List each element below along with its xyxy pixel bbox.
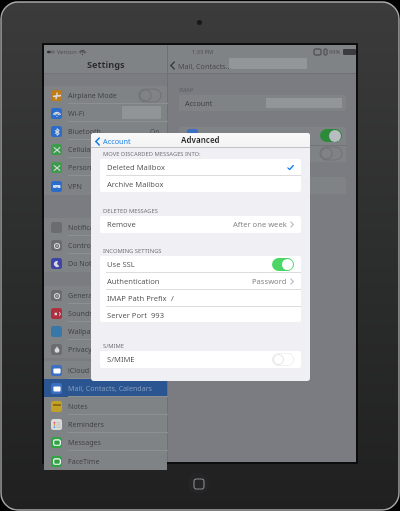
staticText: Wi-Fi [68, 108, 85, 118]
button[interactable]: Personal Hotspot [44, 158, 167, 176]
button[interactable]: Remove [100, 216, 301, 232]
staticText: Password [252, 276, 287, 286]
button[interactable]: Switch [320, 147, 342, 160]
staticText: Verizon [57, 48, 77, 56]
staticText: On [150, 127, 160, 136]
button[interactable]: Privacy [44, 340, 167, 358]
staticText: Archive Mailbox [107, 179, 164, 189]
staticText: Cellular [68, 144, 94, 154]
button[interactable]: Switch [139, 89, 161, 102]
button[interactable]: Authentication [100, 273, 301, 289]
staticText: Settings [87, 58, 125, 71]
staticText: 99% [329, 48, 341, 56]
staticText: After one week [233, 219, 287, 229]
staticText: Wallpaper [68, 326, 102, 336]
staticText: Account [185, 98, 213, 108]
staticText: Server Port [107, 310, 147, 320]
staticText: Use SSL [107, 259, 135, 269]
staticText: Control Center [68, 240, 117, 250]
staticText: Mail, Contacts, Calendars [68, 383, 152, 393]
staticText: / [171, 293, 174, 303]
staticText: VPN [53, 184, 61, 189]
staticText: Account [103, 136, 131, 146]
button[interactable]: Notifications [44, 218, 167, 236]
staticText: Reminders [68, 419, 104, 429]
button[interactable]: Deleted Mailbox [100, 159, 301, 175]
staticText: Notes [68, 401, 88, 411]
button[interactable]: FaceTime [44, 452, 167, 470]
staticText: INCOMING SETTINGS [103, 247, 162, 255]
staticText: Deleted Mailbox [107, 162, 165, 172]
button[interactable]: Switch on [272, 258, 294, 271]
button[interactable]: Back [170, 59, 400, 72]
button[interactable]: Server Port [100, 307, 301, 322]
staticText: iCloud [68, 365, 90, 375]
staticText: Messages [68, 437, 101, 447]
staticText: 1:33 PM [192, 48, 214, 56]
button[interactable]: Do Not Disturb [44, 254, 167, 272]
staticText: Personal Hotspot [68, 162, 126, 172]
staticText: Authentication [107, 276, 160, 286]
staticText: Do Not Disturb [68, 258, 119, 268]
button[interactable]: Switch on [320, 129, 342, 142]
button[interactable]: Cellular [44, 140, 167, 158]
button[interactable]: General [44, 286, 167, 304]
button[interactable]: Account [179, 95, 346, 111]
staticText: MOVE DISCARDED MESSAGES INTO: [103, 150, 201, 158]
button[interactable]: Use SSL [100, 256, 301, 272]
button[interactable]: iCloud [44, 361, 167, 379]
staticText: Airplane Mode [68, 90, 117, 100]
staticText: DELETED MESSAGES [103, 207, 158, 215]
button[interactable]: Wi-Fi [44, 104, 167, 122]
button[interactable]: Archive Mailbox [100, 176, 301, 192]
button[interactable]: Wallpaper [44, 322, 167, 340]
staticText: Bluetooth [68, 126, 101, 136]
staticText: Notifications [68, 222, 111, 232]
staticText: IMAP Path Prefix [107, 293, 167, 303]
button[interactable]: Switch off [272, 353, 294, 366]
staticText: S/MIME [107, 354, 135, 364]
button[interactable]: Messages [44, 433, 167, 451]
staticText: IMAP [179, 86, 194, 94]
button[interactable]: Notes [44, 397, 167, 415]
staticText: Mail, Contacts... [178, 61, 232, 71]
staticText: 993 [151, 310, 165, 320]
button[interactable]: Control Center [44, 236, 167, 254]
button[interactable]: IMAP Path Prefix [100, 290, 301, 306]
button[interactable]: Reminders [44, 415, 167, 433]
button[interactable]: Airplane Mode [44, 86, 167, 104]
button[interactable]: Account [95, 136, 131, 146]
staticText: General [68, 290, 95, 300]
button[interactable]: Bluetooth [44, 122, 167, 140]
staticText: Privacy [68, 344, 92, 354]
staticText: VPN [68, 181, 82, 191]
button[interactable]: S/MIME [100, 351, 301, 367]
staticText: FaceTime [68, 456, 100, 466]
staticText: Remove [107, 219, 136, 229]
button[interactable]: Mail, Contacts, Calendars [44, 379, 167, 397]
staticText: Sounds [68, 308, 93, 318]
staticText: Advanced [181, 135, 220, 146]
button[interactable]: Home [188, 473, 209, 494]
staticText: S/MIME [103, 342, 125, 350]
button[interactable]: Sounds [44, 304, 167, 322]
button[interactable]: VPN [44, 177, 167, 195]
